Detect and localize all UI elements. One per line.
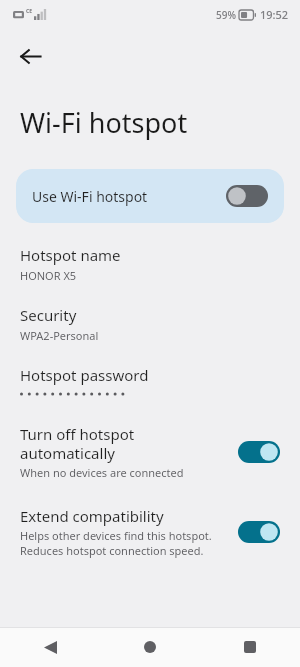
button[interactable]: On [238, 521, 280, 543]
staticText: Reduces hotspot connection speed. [20, 543, 204, 558]
button[interactable]: Security [0, 305, 300, 343]
staticText: HONOR X5 [20, 268, 77, 283]
button[interactable]: Turn off hotspot automatically [0, 424, 300, 480]
staticText: Helps other devices find this hotspot. [20, 528, 212, 543]
staticText: Turn off hotspot automatically [20, 424, 135, 463]
button[interactable]: Use Wi-Fi hotspot [16, 169, 284, 223]
staticText: CE [26, 8, 33, 15]
button[interactable]: Extend compatibility [0, 506, 300, 558]
button[interactable]: Back [0, 627, 100, 667]
staticText: 19:52 [260, 7, 289, 22]
button[interactable]: Hotspot password [0, 365, 300, 398]
button[interactable]: Back [8, 34, 52, 78]
button[interactable]: On [238, 441, 280, 463]
staticText: WPA2-Personal [20, 328, 99, 343]
staticText: When no devices are connected [20, 465, 184, 480]
staticText: Use Wi-Fi hotspot [32, 187, 226, 206]
staticText: Security [20, 305, 77, 325]
button[interactable]: Recent apps [200, 627, 300, 667]
staticText: Wi-Fi hotspot [20, 104, 188, 141]
staticText: Hotspot password [20, 365, 149, 385]
staticText: Extend compatibility [20, 506, 164, 526]
button[interactable]: Off [226, 185, 268, 207]
staticText: 59% [216, 8, 236, 22]
button[interactable]: Hotspot name [0, 245, 300, 283]
button[interactable]: Home [100, 627, 200, 667]
staticText: Hotspot name [20, 245, 121, 265]
